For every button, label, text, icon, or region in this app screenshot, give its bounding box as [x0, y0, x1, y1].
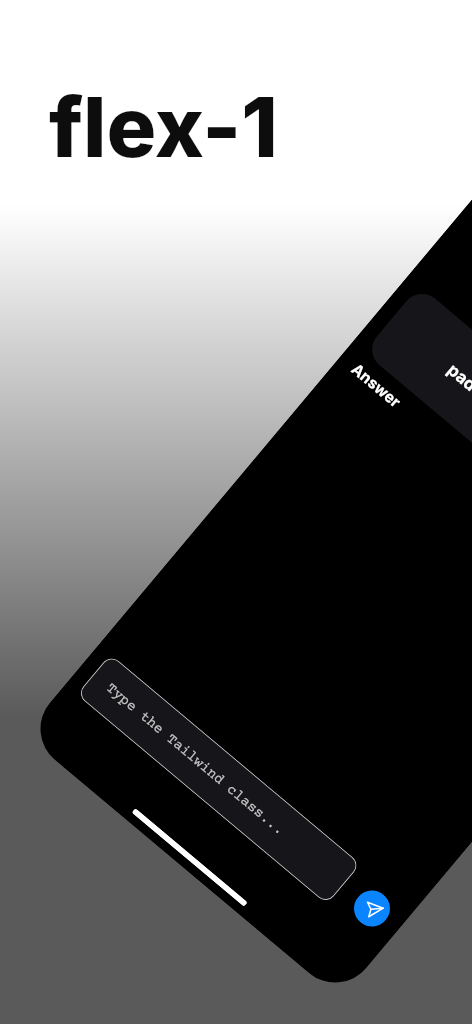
button[interactable]: Type the Tailwind class... — [76, 654, 361, 905]
staticText: flex-1 — [49, 77, 278, 177]
staticText: pad an element on all sides — [443, 359, 472, 519]
staticText: Answer — [348, 359, 405, 412]
staticText: Type the Tailwind class... — [102, 681, 287, 839]
button[interactable]: pad an element on all sides — [363, 285, 472, 598]
button[interactable]: Send — [347, 883, 397, 934]
